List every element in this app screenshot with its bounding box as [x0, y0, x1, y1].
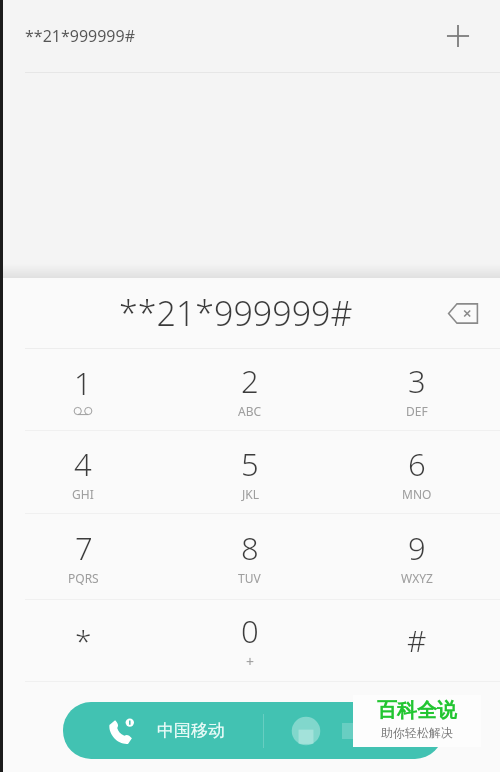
staticText: 2	[241, 360, 259, 402]
staticText: 中国移动	[157, 720, 225, 741]
button[interactable]: 9	[333, 514, 500, 599]
staticText: JKL	[242, 486, 259, 502]
staticText: #	[407, 620, 427, 661]
button[interactable]: Add contact	[434, 12, 482, 60]
staticText: WXYZ	[401, 570, 433, 586]
staticText: 助你轻松解决	[381, 725, 453, 740]
staticText: 5	[241, 443, 259, 485]
staticText: 7	[75, 527, 93, 569]
staticText: 4	[74, 443, 92, 485]
button[interactable]: #	[333, 600, 500, 681]
staticText: *	[75, 620, 92, 661]
staticText: 6	[408, 443, 426, 485]
button[interactable]: 5	[166, 431, 333, 513]
staticText: **21*999999#	[25, 25, 136, 47]
button[interactable]: 中国移动	[63, 702, 443, 759]
staticText: MNO	[402, 486, 432, 502]
staticText: +	[246, 652, 255, 671]
button[interactable]: Backspace	[440, 290, 486, 336]
staticText: PQRS	[68, 570, 99, 586]
staticText: 1	[74, 362, 92, 404]
button[interactable]: 4	[0, 431, 166, 513]
button[interactable]: 3	[333, 349, 500, 430]
staticText: 8	[241, 527, 259, 569]
staticText: ABC	[238, 403, 262, 419]
button[interactable]: 7	[0, 514, 166, 599]
staticText: GHI	[72, 486, 94, 502]
staticText: DEF	[406, 403, 428, 419]
staticText: 百科全说	[377, 698, 457, 723]
staticText: **21*999999#	[119, 290, 353, 336]
button[interactable]: 6	[333, 431, 500, 513]
button[interactable]: 1	[0, 349, 166, 430]
staticText: 9	[408, 527, 426, 569]
button[interactable]: 2	[166, 349, 333, 430]
staticText: TUV	[238, 570, 261, 586]
button[interactable]: 8	[166, 514, 333, 599]
button[interactable]: 0	[166, 600, 333, 681]
staticText: 0	[241, 610, 259, 652]
button[interactable]: *	[0, 600, 166, 681]
staticText: 3	[408, 360, 426, 402]
